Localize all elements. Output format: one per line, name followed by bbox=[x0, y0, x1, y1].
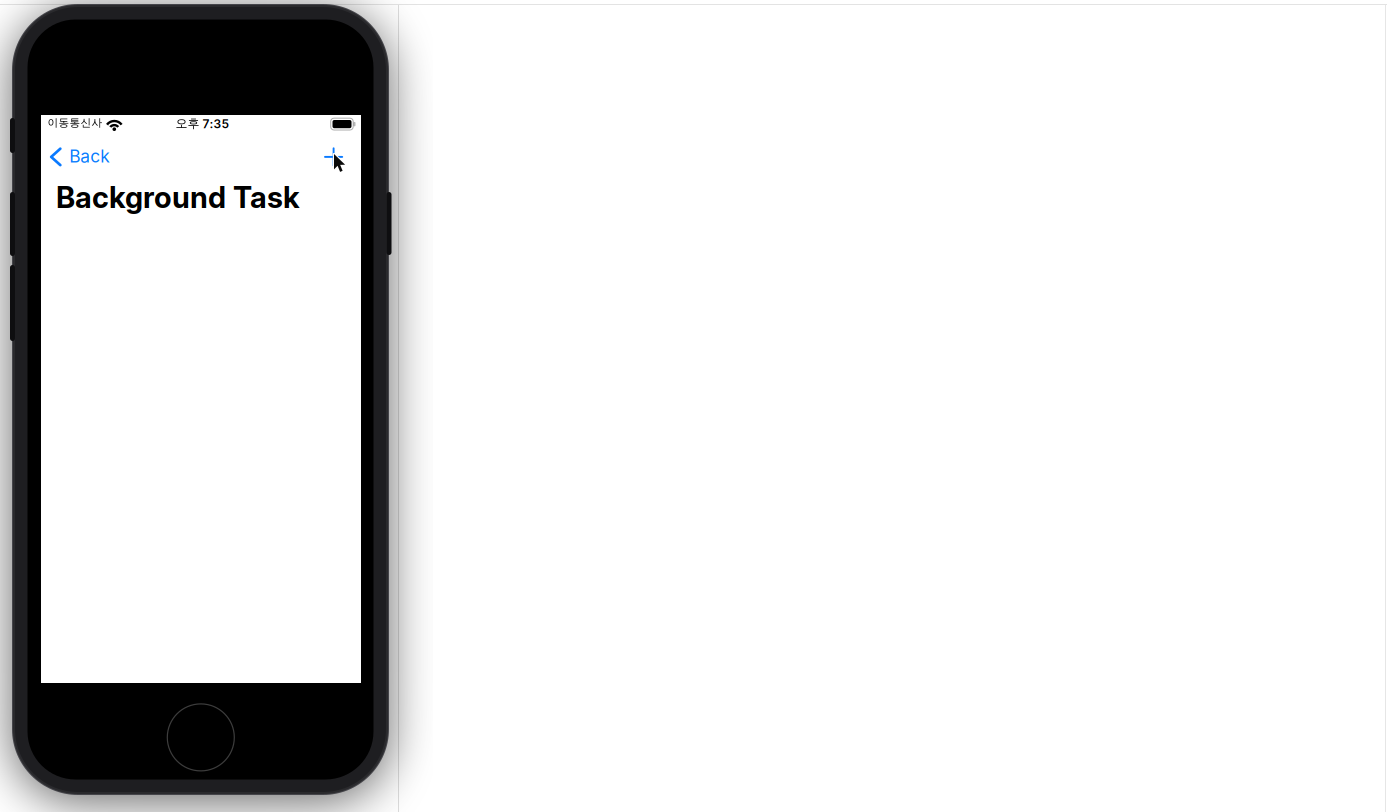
button[interactable]: Add bbox=[313, 135, 357, 179]
staticText: 이동통신사 bbox=[47, 116, 102, 129]
button[interactable]: Back bbox=[41, 135, 117, 179]
staticText: Background Task bbox=[56, 180, 300, 215]
staticText: 오후 7:35 bbox=[175, 116, 229, 131]
staticText: Back bbox=[69, 146, 110, 167]
